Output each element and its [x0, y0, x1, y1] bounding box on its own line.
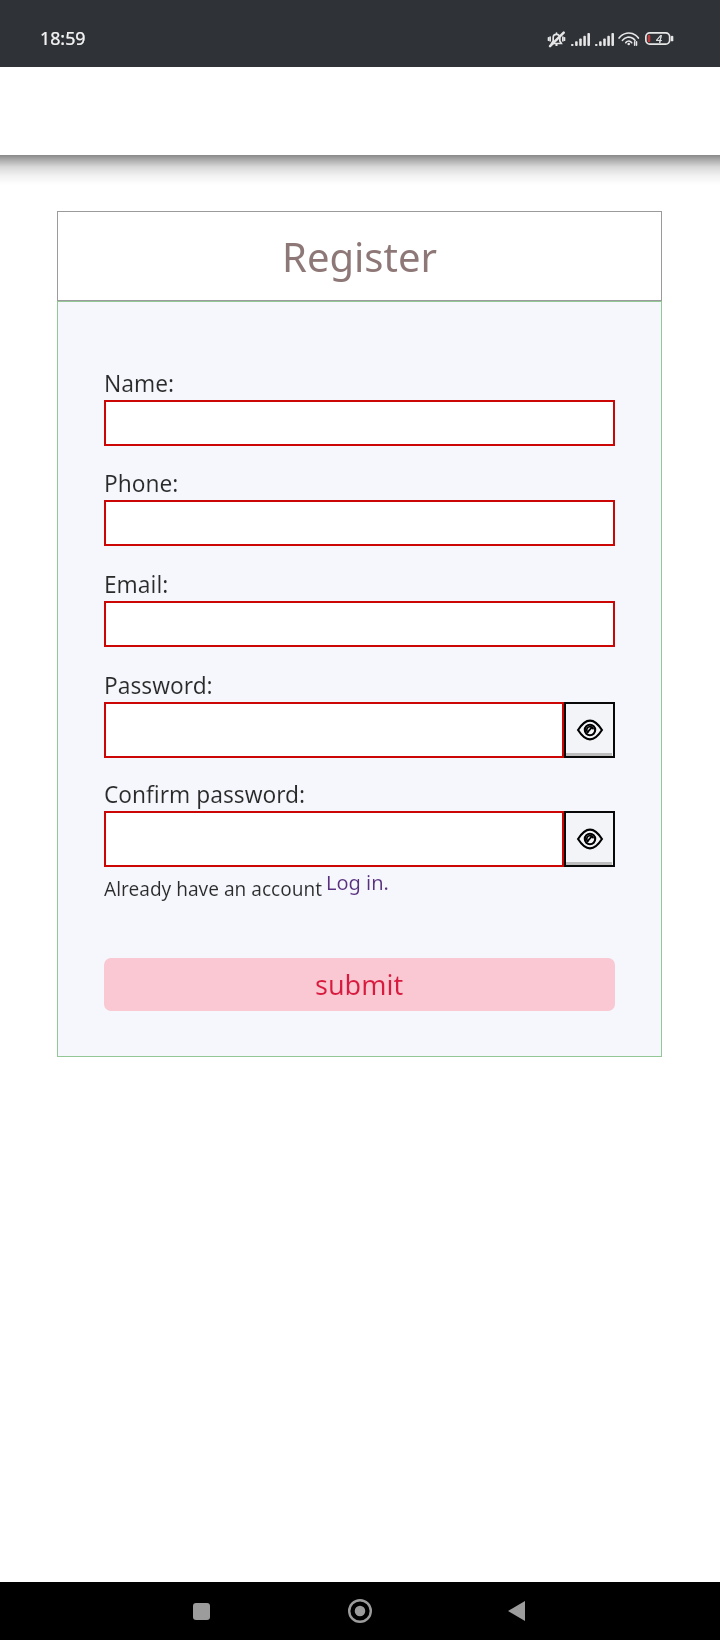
button[interactable]: submit	[104, 958, 615, 1011]
button[interactable]	[104, 400, 615, 446]
button[interactable]: Log in.	[326, 869, 389, 896]
staticText: Email:	[104, 569, 169, 600]
staticText: submit	[315, 966, 404, 1003]
button[interactable]	[104, 601, 615, 647]
button[interactable]: Home	[331, 1582, 389, 1640]
button[interactable]: Back	[487, 1582, 545, 1640]
button[interactable]: Show password	[564, 811, 615, 867]
staticText: Confirm password:	[104, 779, 306, 810]
button[interactable]	[104, 500, 615, 546]
staticText: Register	[282, 229, 438, 283]
staticText: Already have an account	[104, 876, 322, 902]
button[interactable]: Show password	[564, 702, 615, 758]
button[interactable]: Recents	[172, 1582, 230, 1640]
staticText: 4	[656, 31, 663, 46]
staticText: Password:	[104, 670, 213, 701]
staticText: Name:	[104, 368, 175, 399]
staticText: 18:59	[40, 26, 86, 50]
button[interactable]	[104, 811, 564, 867]
staticText: Phone:	[104, 468, 179, 499]
button[interactable]	[104, 702, 564, 758]
